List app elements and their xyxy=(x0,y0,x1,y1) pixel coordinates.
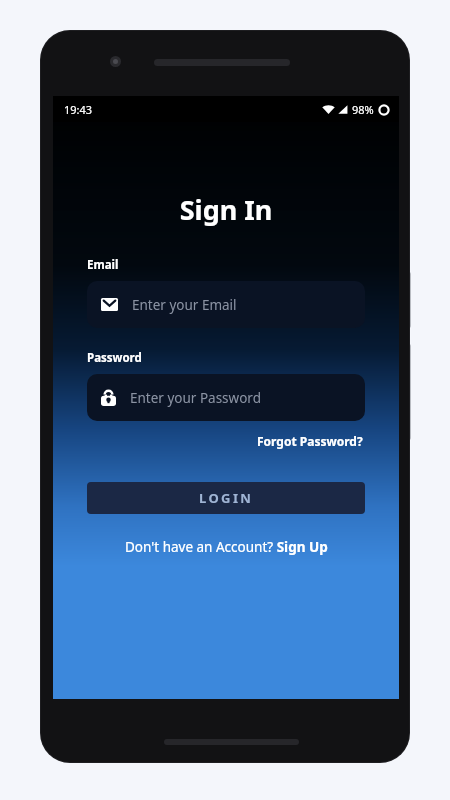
button[interactable]: LOGIN xyxy=(87,482,365,514)
staticText: Forgot Password? xyxy=(257,433,363,449)
staticText: Enter your Email xyxy=(132,296,237,314)
button[interactable]: Password xyxy=(87,374,365,421)
button[interactable]: Forgot Password? xyxy=(255,430,365,452)
staticText: Email xyxy=(87,257,119,273)
staticText: Don't have an Account? Sign Up xyxy=(125,538,328,556)
button[interactable]: Don't have an Account? Sign Up xyxy=(121,535,332,559)
button[interactable]: Email xyxy=(87,281,365,328)
staticText: 98% xyxy=(352,102,374,117)
other: Password xyxy=(101,389,116,406)
staticText: Enter your Password xyxy=(130,389,261,407)
staticText: LOGIN xyxy=(199,489,254,507)
staticText: Password xyxy=(87,350,142,366)
other: Email xyxy=(101,298,118,311)
staticText: Sign In xyxy=(53,191,399,228)
staticText: 19:43 xyxy=(64,102,93,117)
